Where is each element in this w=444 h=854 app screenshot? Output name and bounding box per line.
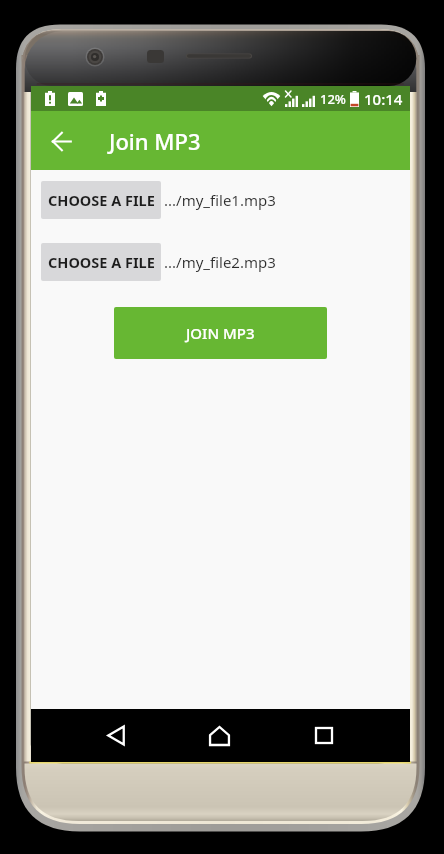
staticText: .../my_file2.mp3: [164, 252, 276, 272]
button[interactable]: JOIN MP3: [114, 307, 327, 359]
staticText: JOIN MP3: [186, 323, 255, 343]
button[interactable]: Back: [105, 709, 126, 762]
staticText: 10:14: [364, 89, 403, 109]
button[interactable]: Back: [38, 118, 84, 164]
staticText: .../my_file1.mp3: [164, 190, 276, 210]
staticText: CHOOSE A FILE: [48, 190, 155, 210]
button[interactable]: CHOOSE A FILE: [41, 181, 161, 219]
button[interactable]: Recent apps: [313, 709, 334, 762]
staticText: CHOOSE A FILE: [48, 252, 155, 272]
button[interactable]: CHOOSE A FILE: [41, 243, 161, 281]
staticText: 12%: [320, 90, 346, 108]
button[interactable]: Home: [209, 709, 230, 762]
staticText: Join MP3: [109, 126, 201, 156]
